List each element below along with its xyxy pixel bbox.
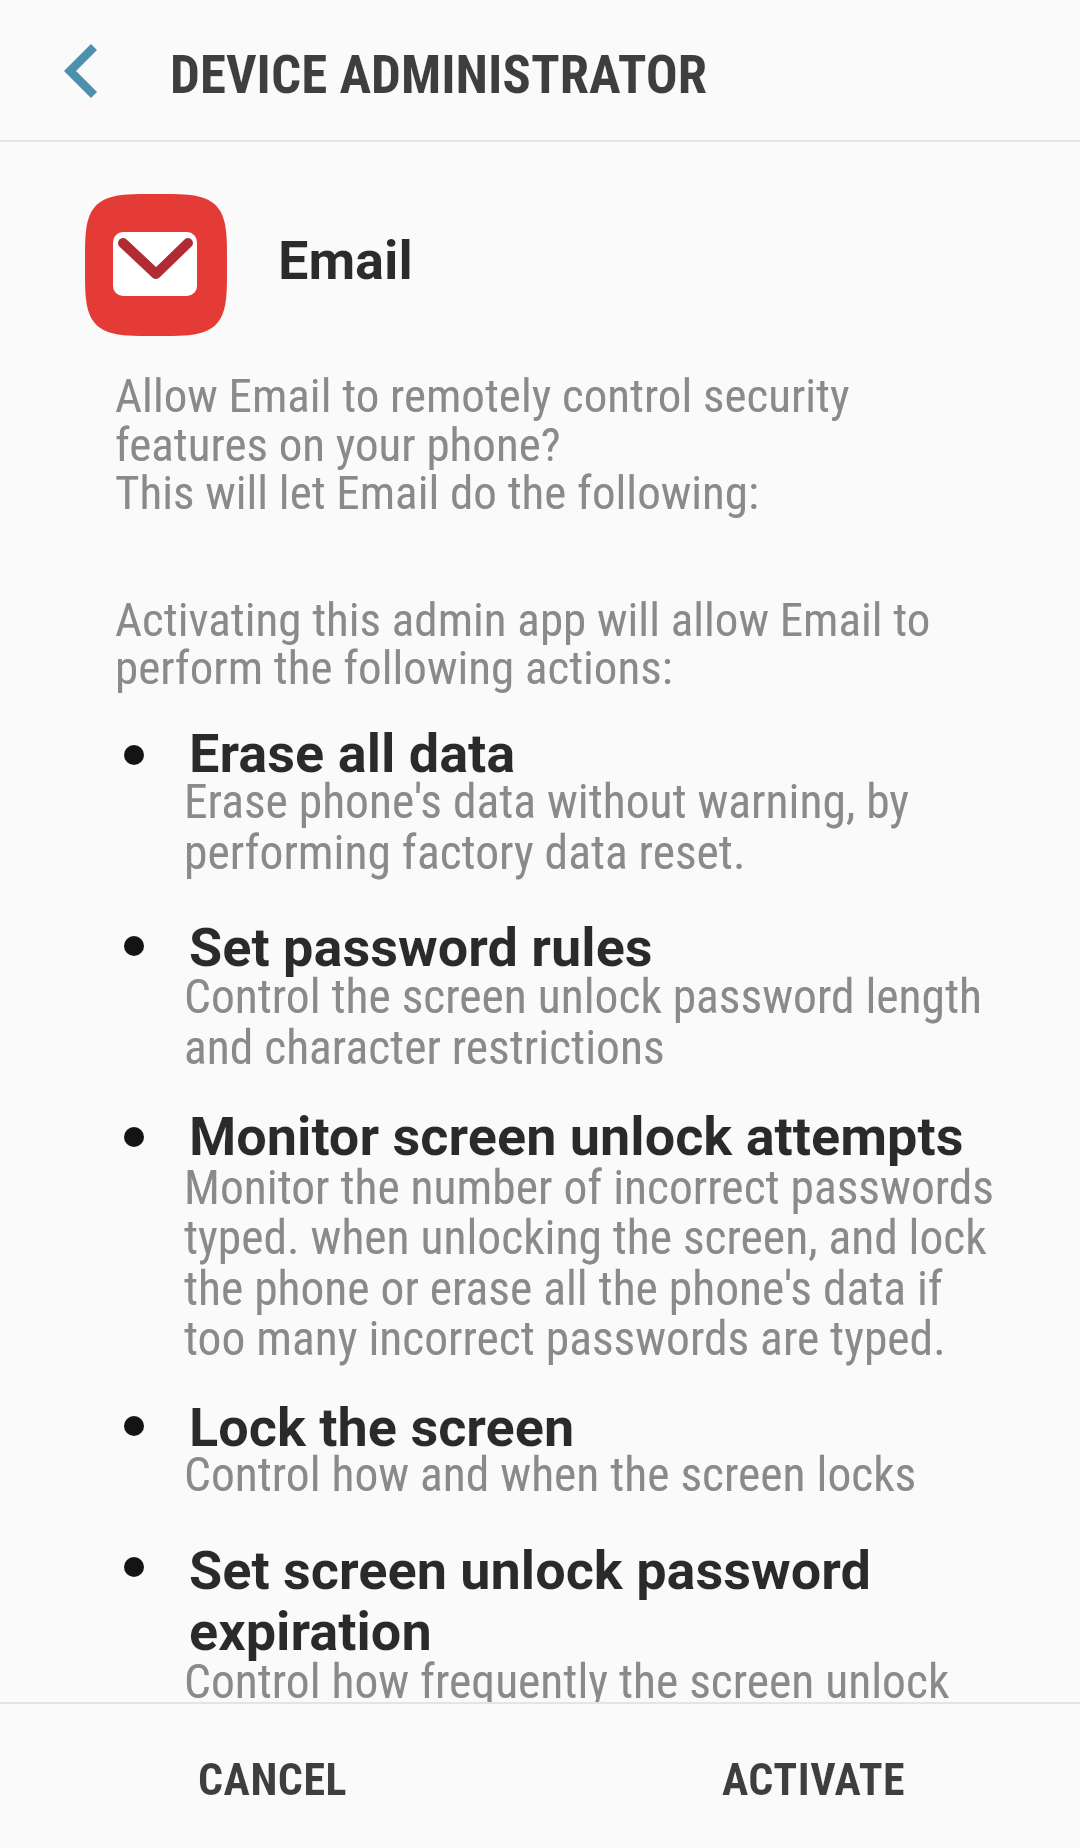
staticText: CANCEL	[198, 1754, 348, 1806]
staticText: DEVICE ADMINISTRATOR	[170, 44, 708, 106]
staticText: features on your phone?	[115, 417, 561, 472]
staticText: This will let Email do the following:	[115, 465, 759, 520]
staticText: Monitor the number of incorrect password…	[184, 1160, 995, 1216]
staticText: Control how frequently the screen unlock	[184, 1654, 950, 1710]
staticText: typed. when unlocking the screen, and lo…	[184, 1210, 987, 1266]
staticText: performing factory data reset.	[184, 825, 746, 881]
staticText: Erase phone's data without warning, by	[184, 774, 910, 830]
staticText: Erase all data	[189, 722, 516, 785]
staticText: Set screen unlock password	[189, 1539, 871, 1602]
staticText: Email	[278, 229, 413, 292]
button[interactable]	[160, 1702, 390, 1848]
staticText: Lock the screen	[189, 1396, 575, 1459]
staticText: expiration	[189, 1600, 432, 1663]
staticText: perform the following actions:	[115, 640, 673, 695]
button[interactable]	[684, 1702, 944, 1848]
button[interactable]	[0, 0, 140, 140]
staticText: Allow Email to remotely control security	[115, 368, 850, 423]
staticText: ACTIVATE	[722, 1754, 906, 1806]
staticText: and character restrictions	[184, 1020, 665, 1076]
staticText: Activating this admin app will allow Ema…	[115, 592, 931, 647]
staticText: too many incorrect passwords are typed.	[184, 1311, 946, 1367]
staticText: Control the screen unlock password lengt…	[184, 969, 982, 1025]
staticText: Set password rules	[189, 916, 653, 979]
staticText: the phone or erase all the phone's data …	[184, 1261, 943, 1317]
staticText: Control how and when the screen locks	[184, 1447, 917, 1503]
staticText: Monitor screen unlock attempts	[189, 1105, 964, 1168]
